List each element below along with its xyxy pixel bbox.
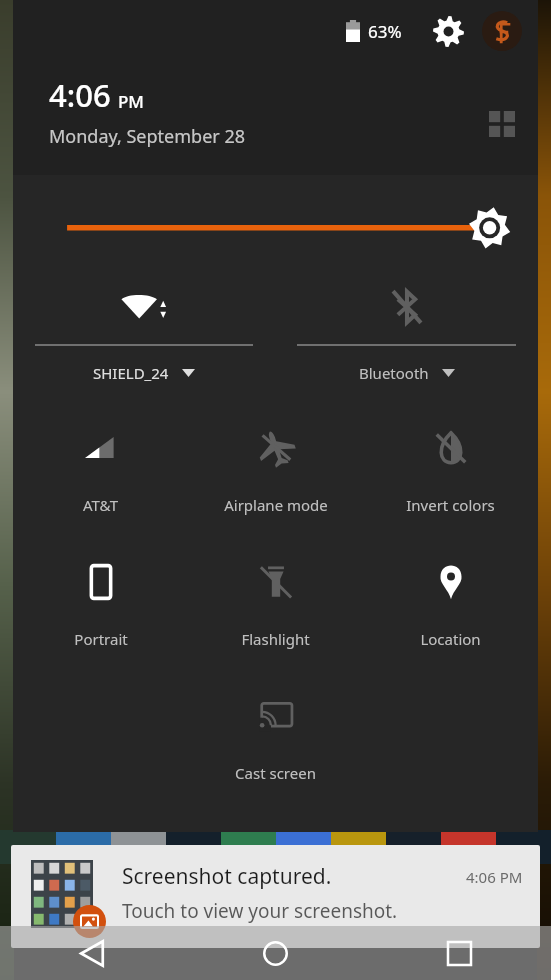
staticText: Cast screen — [235, 763, 316, 783]
button[interactable]: Recent apps — [431, 926, 487, 980]
button[interactable]: Home — [247, 926, 303, 980]
button[interactable]: User profile — [482, 11, 522, 51]
button[interactable]: Settings — [426, 9, 470, 53]
staticText: AT&T — [83, 495, 118, 515]
staticText: 63% — [368, 20, 402, 43]
button[interactable]: Invert colors — [363, 413, 538, 547]
staticText: Location — [420, 629, 481, 649]
button[interactable]: Screenshot captured. — [11, 845, 540, 948]
staticText: Portrait — [74, 629, 128, 649]
button[interactable]: Airplane mode — [188, 413, 363, 547]
button[interactable]: Portrait — [13, 547, 188, 681]
button[interactable]: Cast screen — [188, 681, 363, 815]
button[interactable]: Back — [64, 926, 120, 980]
staticText: Invert colors — [406, 495, 495, 515]
button[interactable]: Brightness — [13, 175, 538, 271]
staticText: Airplane mode — [224, 495, 328, 515]
staticText: 4:06 PM — [466, 867, 523, 887]
button[interactable]: Flashlight — [188, 547, 363, 681]
button[interactable]: Edit tiles — [480, 102, 524, 146]
staticText: Monday, September 28 — [49, 124, 245, 149]
staticText: SHIELD_24 — [93, 363, 169, 383]
staticText: Flashlight — [241, 629, 310, 649]
button[interactable]: Bluetooth — [275, 271, 538, 403]
staticText: 4:06 — [49, 74, 111, 116]
button[interactable]: SHIELD_24 — [13, 271, 275, 403]
staticText: Touch to view your screenshot. — [122, 898, 398, 924]
staticText: PM — [118, 90, 144, 113]
button[interactable]: Location — [363, 547, 538, 681]
staticText: Bluetooth — [359, 363, 429, 383]
button[interactable]: AT&T — [13, 413, 188, 547]
staticText: Screenshot captured. — [122, 862, 332, 891]
